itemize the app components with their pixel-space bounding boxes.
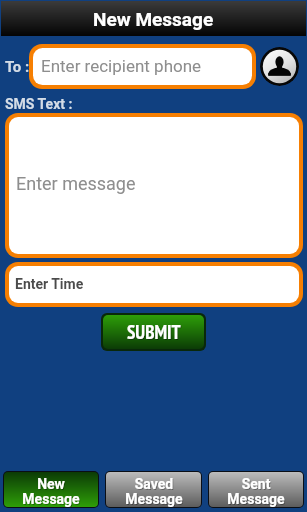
button[interactable]: SUBMIT <box>103 315 204 349</box>
staticText: Sent Message <box>227 476 285 507</box>
staticText: New Message <box>22 476 80 507</box>
staticText: Saved Message <box>126 477 184 507</box>
staticText: SMS Text : <box>5 96 73 112</box>
button[interactable]: Saved Message <box>106 472 201 507</box>
button[interactable]: New Message <box>4 472 98 507</box>
staticText: Enter recipient phone <box>41 56 202 76</box>
staticText: Saved Message <box>125 476 183 507</box>
staticText: SUBMIT <box>128 321 182 346</box>
staticText: Enter message <box>16 173 136 194</box>
button[interactable]: Enter Time <box>9 266 299 303</box>
staticText: Sent Message <box>228 477 286 507</box>
button[interactable]: New Message <box>1 1 306 36</box>
button[interactable]: Enter message <box>9 117 299 254</box>
staticText: Enter Time <box>15 276 84 292</box>
staticText: SUBMIT <box>127 320 181 345</box>
button[interactable]: Enter recipient phone <box>33 48 252 85</box>
staticText: To : <box>5 58 30 76</box>
staticText: New Message <box>93 8 214 30</box>
button[interactable]: Choose contact <box>260 47 299 86</box>
staticText: New Message <box>23 477 81 507</box>
button[interactable]: Sent Message <box>209 472 303 507</box>
